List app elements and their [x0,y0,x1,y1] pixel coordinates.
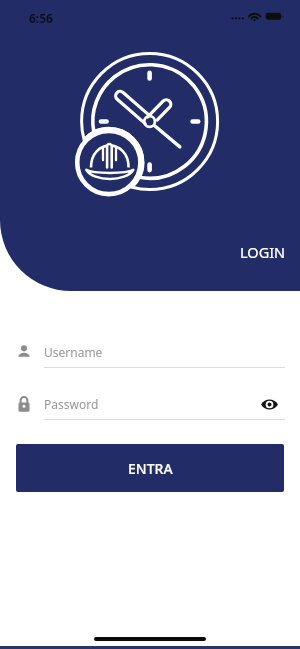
button[interactable]: Password [0,388,300,420]
staticText: 6:56 [29,10,53,26]
button[interactable]: Show password [259,394,279,414]
staticText: Password [44,396,99,412]
button[interactable]: ENTRA [16,444,284,492]
staticText: LOGIN [240,242,286,262]
staticText: Username [44,344,103,360]
staticText: ENTRA [128,459,173,478]
button[interactable]: Username [0,336,300,368]
